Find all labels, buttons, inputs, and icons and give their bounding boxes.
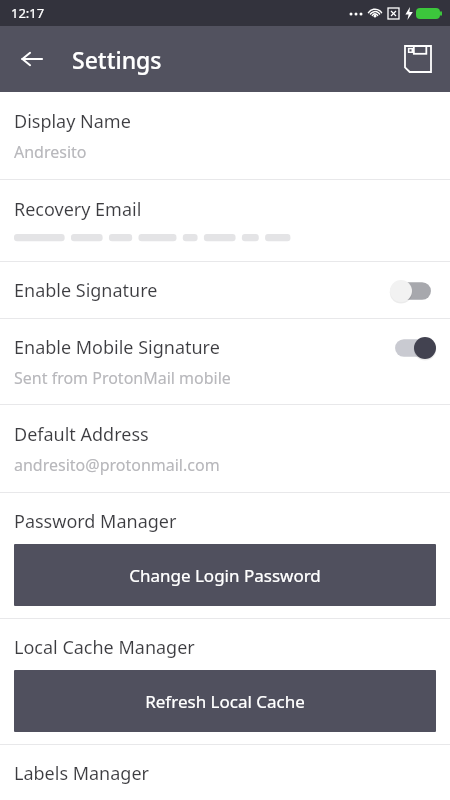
- staticText: Password Manager: [14, 509, 177, 534]
- staticText: Recovery Email: [14, 197, 142, 222]
- staticText: Local Cache Manager: [14, 635, 195, 660]
- staticText: Refresh Local Cache: [145, 690, 305, 713]
- staticText: Enable Mobile Signature: [14, 335, 220, 360]
- staticText: Settings: [72, 44, 162, 75]
- button[interactable]: Display Name: [0, 92, 450, 179]
- button[interactable]: Back: [8, 35, 56, 83]
- staticText: Enable Signature: [14, 278, 158, 303]
- staticText: Change Login Password: [129, 564, 321, 587]
- staticText: Andresito: [14, 141, 87, 163]
- button[interactable]: Recovery Email: [0, 180, 450, 261]
- staticText: Default Address: [14, 422, 149, 447]
- staticText: Display Name: [14, 109, 131, 134]
- button[interactable]: Enable Mobile Signature: [0, 319, 450, 404]
- staticText: 12:17: [11, 4, 45, 22]
- staticText: andresito@protonmail.com: [14, 454, 220, 476]
- staticText: Sent from ProtonMail mobile: [14, 367, 231, 389]
- button[interactable]: Refresh Local Cache: [14, 670, 436, 732]
- button[interactable]: Enable Signature: [0, 262, 450, 318]
- staticText: Labels Manager: [14, 761, 149, 786]
- button[interactable]: Default Address: [0, 405, 450, 492]
- button[interactable]: Change Login Password: [14, 544, 436, 606]
- button[interactable]: Save: [394, 35, 442, 83]
